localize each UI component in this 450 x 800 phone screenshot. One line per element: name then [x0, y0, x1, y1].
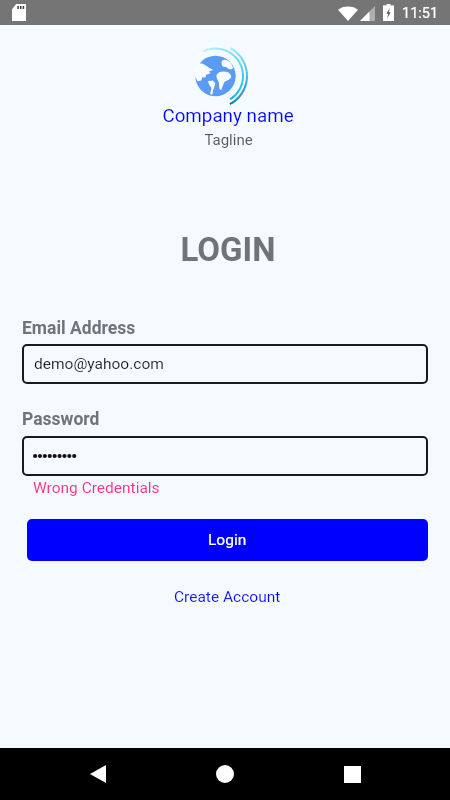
staticText: demo@yahoo.com	[34, 355, 164, 373]
button[interactable]: Back	[62, 748, 134, 800]
staticText: Company name	[162, 105, 294, 127]
button[interactable]: Create Account	[168, 585, 287, 609]
staticText: Login	[208, 531, 247, 549]
staticText: LOGIN	[180, 230, 276, 269]
button[interactable]: demo@yahoo.com	[22, 344, 428, 384]
staticText: Tagline	[204, 131, 253, 149]
staticText: Wrong Credentials	[33, 479, 160, 497]
staticText: Password	[22, 409, 100, 430]
staticText: 11:51	[402, 5, 439, 22]
button[interactable]	[22, 436, 428, 476]
staticText: Email Address	[22, 318, 136, 339]
button[interactable]: Login	[27, 519, 428, 561]
button[interactable]: Home	[189, 748, 261, 800]
button[interactable]: Recent apps	[316, 748, 388, 800]
